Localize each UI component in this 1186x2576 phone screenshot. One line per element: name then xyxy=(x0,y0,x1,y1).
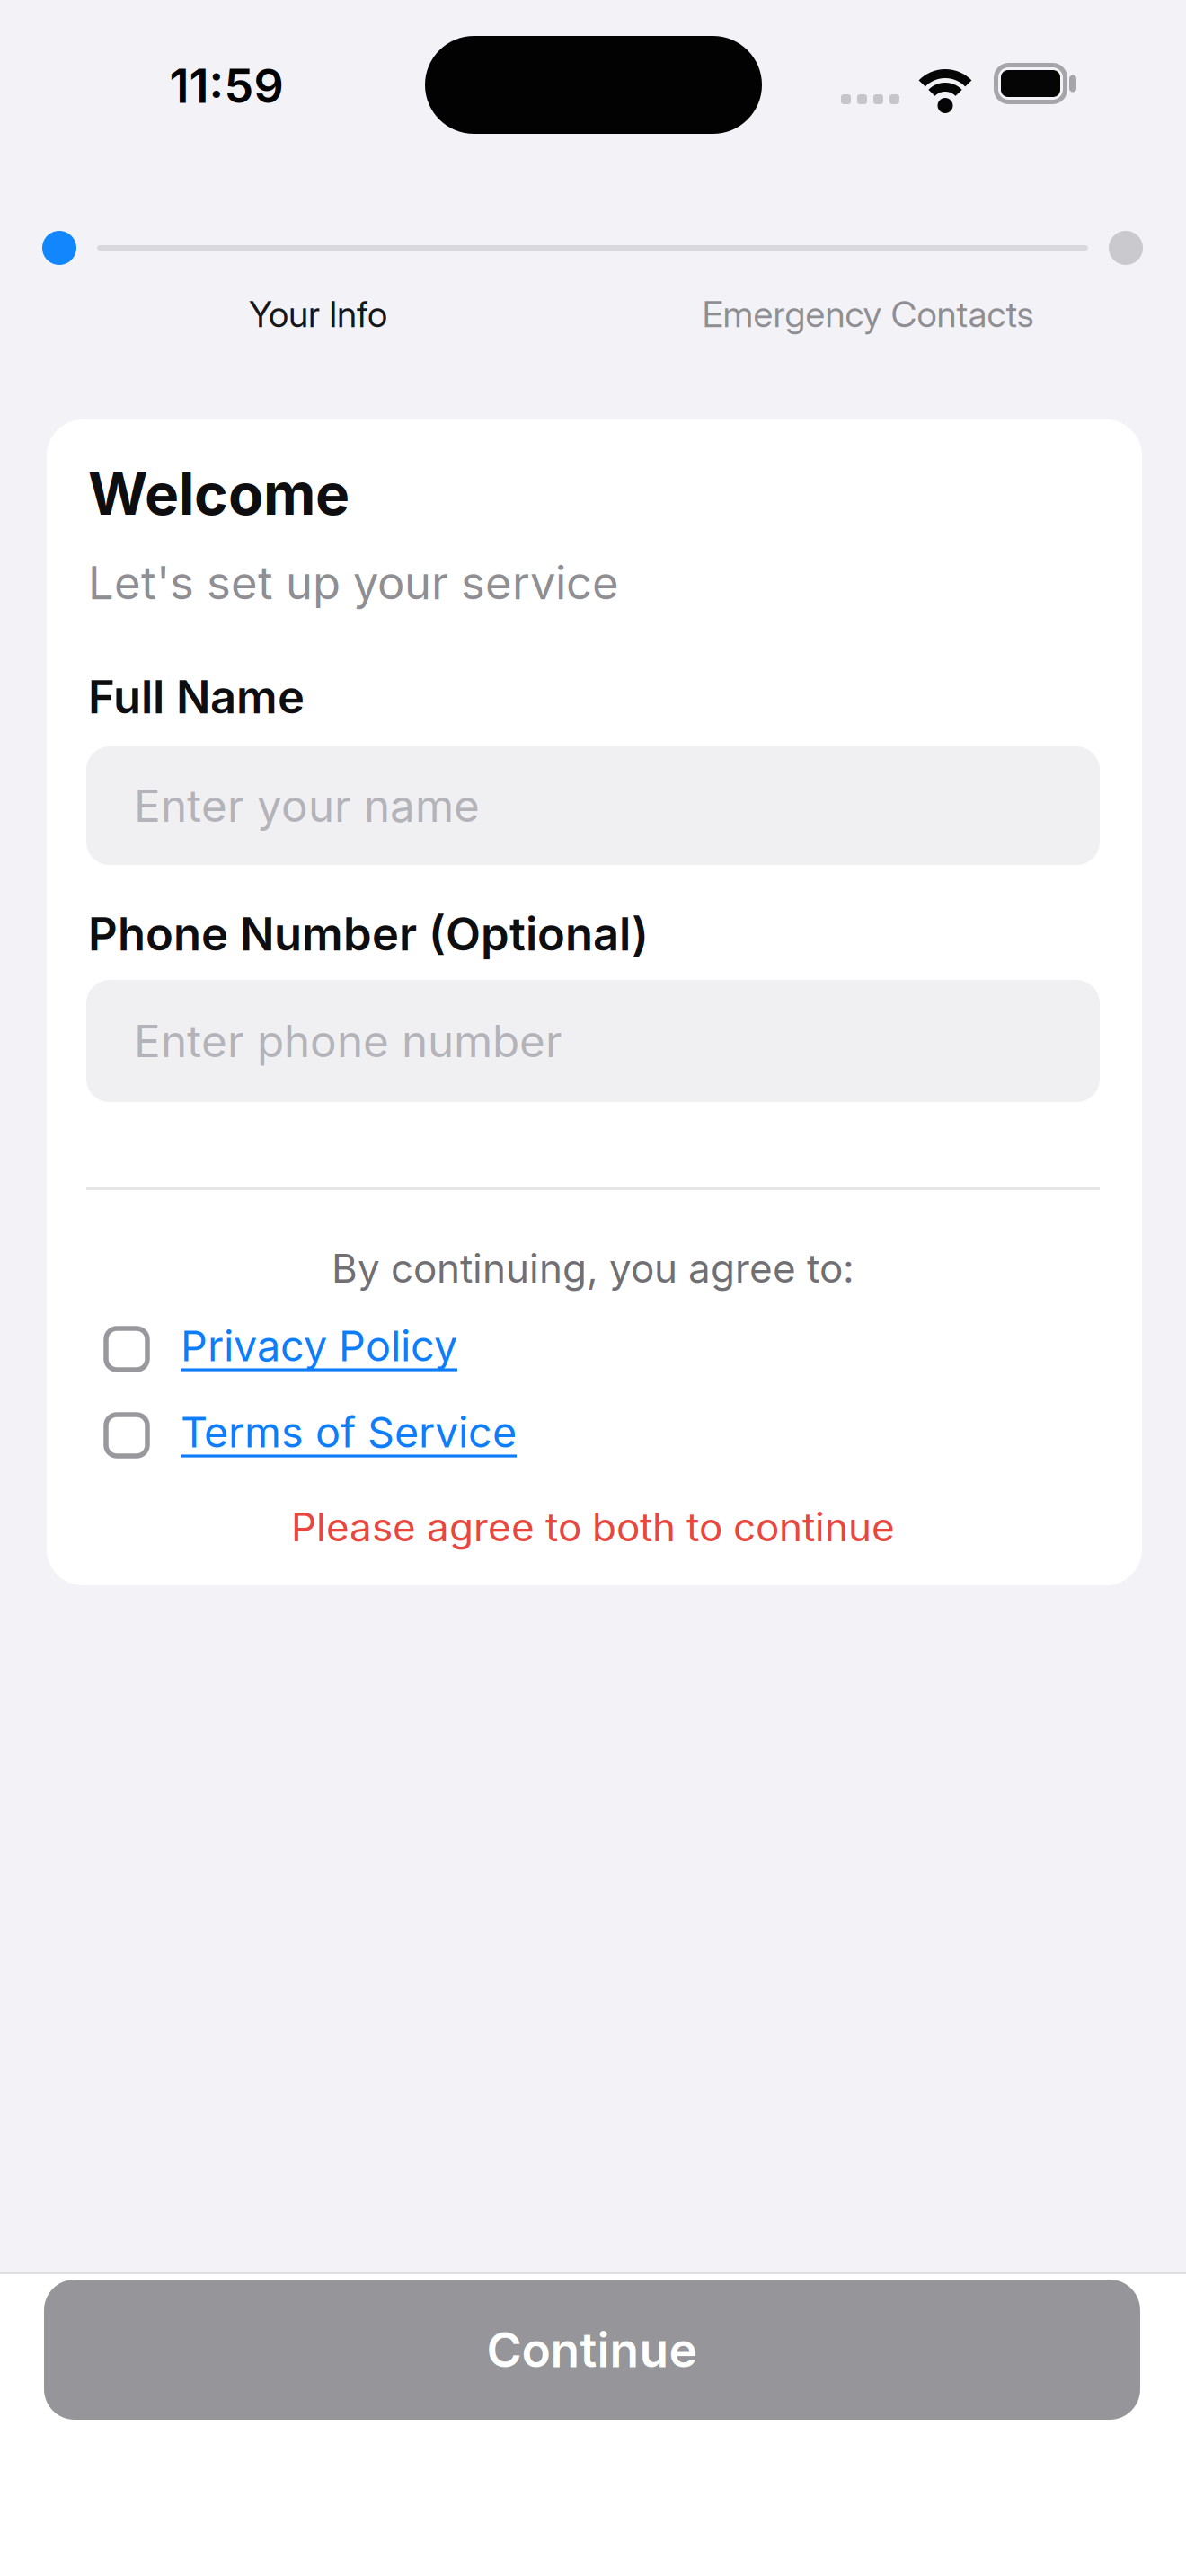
staticText: Continue xyxy=(487,2321,698,2378)
button[interactable]: Enter phone number xyxy=(86,980,1100,1102)
staticText: 11:59 xyxy=(169,58,283,113)
staticText: Let's set up your service xyxy=(88,556,619,610)
button[interactable]: Agree to Privacy Policy xyxy=(106,1328,147,1370)
staticText: Emergency Contacts xyxy=(702,293,1034,335)
button[interactable]: Enter your name xyxy=(86,746,1100,865)
staticText: Enter phone number xyxy=(134,1015,562,1067)
staticText: Enter your name xyxy=(134,780,480,832)
button[interactable]: Terms of Service xyxy=(181,1407,517,1457)
staticText: Welcome xyxy=(88,460,350,528)
staticText: Phone Number (Optional) xyxy=(88,907,649,961)
staticText: Full Name xyxy=(88,670,305,724)
staticText: Your Info xyxy=(249,293,387,335)
button[interactable]: Agree to Terms of Service xyxy=(106,1415,147,1456)
staticText: Privacy Policy xyxy=(181,1321,457,1371)
button[interactable]: Privacy Policy xyxy=(181,1321,457,1371)
button[interactable]: Continue xyxy=(44,2280,1140,2420)
staticText: Please agree to both to continue xyxy=(291,1504,895,1550)
staticText: Terms of Service xyxy=(181,1407,517,1457)
staticText: By continuing, you agree to: xyxy=(332,1245,854,1292)
